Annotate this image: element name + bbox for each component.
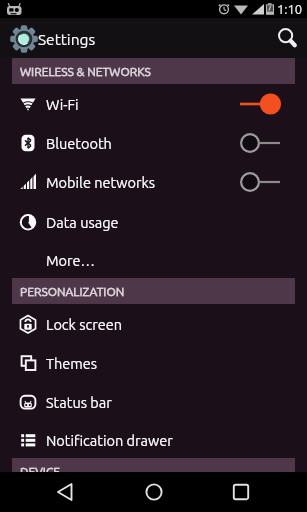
- button[interactable]: Mobile networks: [0, 162, 307, 202]
- staticText: Themes: [46, 355, 98, 371]
- staticText: Data usage: [46, 214, 119, 230]
- button[interactable]: Notification drawer: [0, 421, 307, 458]
- button[interactable]: More…: [0, 241, 307, 278]
- staticText: Wi-Fi: [46, 96, 79, 112]
- button[interactable]: [267, 18, 307, 58]
- staticText: Settings: [38, 31, 96, 48]
- button[interactable]: Themes: [0, 344, 307, 382]
- staticText: More…: [46, 252, 96, 268]
- staticText: Lock screen: [46, 316, 123, 332]
- button[interactable]: Data usage: [0, 202, 307, 241]
- button[interactable]: [217, 472, 265, 512]
- staticText: Status bar: [46, 394, 112, 410]
- button[interactable]: [41, 472, 89, 512]
- staticText: PERSONALIZATION: [20, 285, 125, 298]
- staticText: 1:10: [277, 2, 303, 17]
- button[interactable]: Lock screen: [0, 304, 307, 344]
- staticText: Notification drawer: [46, 432, 173, 448]
- staticText: Bluetooth: [46, 135, 112, 151]
- staticText: DEVICE: [20, 465, 60, 478]
- button[interactable]: Status bar: [0, 382, 307, 421]
- button[interactable]: Wi-Fi: [0, 84, 307, 123]
- button[interactable]: [130, 472, 178, 512]
- button[interactable]: Bluetooth: [0, 123, 307, 162]
- staticText: Mobile networks: [46, 174, 156, 190]
- staticText: WIRELESS & NETWORKS: [20, 65, 151, 78]
